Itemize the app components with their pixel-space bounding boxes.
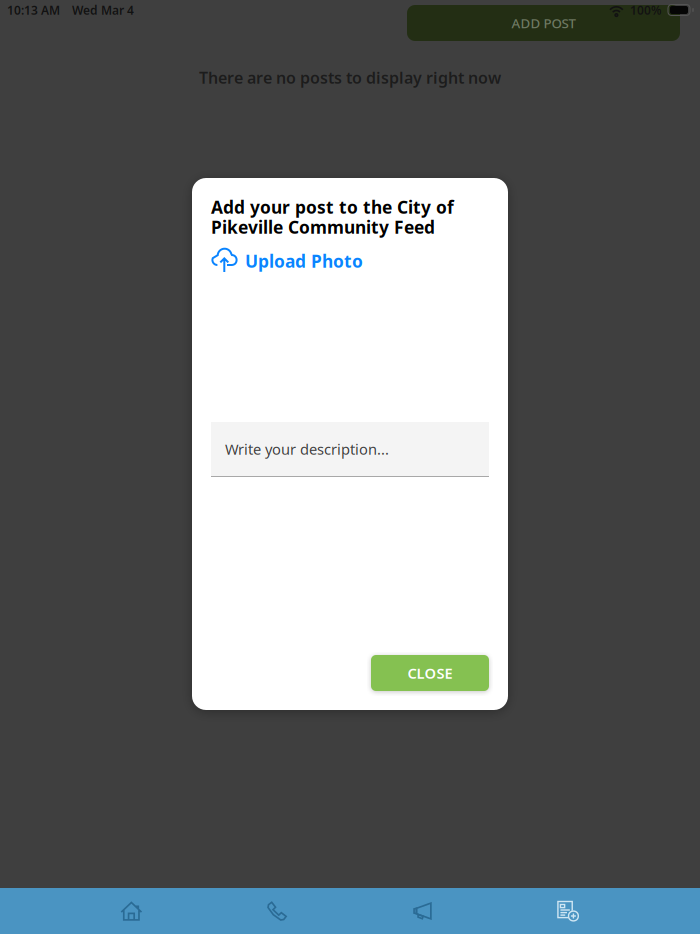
staticText: Write your description... (225, 439, 389, 459)
staticText: 100% (624, 2, 668, 18)
staticText: ADD POST (511, 14, 575, 32)
button[interactable]: Upload Photo (211, 237, 363, 276)
staticText: CLOSE (407, 663, 452, 683)
button[interactable]: Announcements (350, 888, 496, 934)
button[interactable]: Community Feed (496, 888, 642, 934)
button[interactable]: Home (58, 888, 204, 934)
staticText: 10:13 AM (7, 2, 60, 18)
button[interactable]: CLOSE (371, 655, 489, 691)
staticText: Upload Photo (245, 249, 363, 272)
staticText: Add your post to the City of (211, 195, 454, 218)
staticText: Pikeville Community Feed (211, 215, 435, 238)
button[interactable]: ADD POST (407, 5, 680, 41)
staticText: Wed Mar 4 (60, 2, 134, 18)
staticText: There are no posts to display right now (199, 67, 501, 88)
button[interactable]: Contact (204, 888, 350, 934)
